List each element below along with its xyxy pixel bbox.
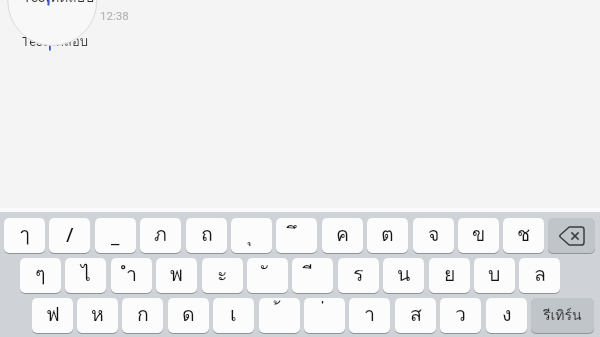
staticText: ร [353,259,364,290]
staticText: ช [517,219,531,250]
staticText: ต [381,219,394,250]
staticText: ถ [201,219,213,250]
staticText: ห [91,299,104,330]
button[interactable]: ห [77,298,118,333]
button[interactable]: Backspace [548,218,595,253]
button[interactable]: ฟ [32,298,73,333]
button[interactable]: ข [458,218,499,253]
button[interactable]: ต [367,218,408,253]
staticText: ๆ [35,259,46,290]
staticText: ข [472,219,486,250]
button[interactable]: ถ [186,218,227,253]
staticText: ไ [81,259,91,290]
staticText: 12:38 [100,9,129,22]
staticText: บ [488,259,501,290]
button[interactable]: ึ [276,218,317,253]
staticText: ก [137,299,149,330]
staticText: จ [428,219,440,250]
button[interactable]: ว [440,298,481,333]
button[interactable]: า [349,298,390,333]
button[interactable]: ไ [65,258,106,293]
staticText: ล [534,259,546,290]
button[interactable]: / [49,218,90,253]
staticText: ด [182,299,195,330]
staticText: รีเทิร์น [543,304,582,326]
staticText: ค [336,219,350,250]
staticText: เ [230,299,237,330]
button[interactable]: ช [503,218,544,253]
button[interactable]: พ [156,258,197,293]
button[interactable]: บ [474,258,515,293]
button[interactable]: ค [322,218,363,253]
button[interactable]: ่ [304,298,345,333]
button[interactable]: รีเทิร์น [531,298,594,333]
staticText: ๅ [20,219,30,250]
button[interactable]: ๆ [20,258,61,293]
staticText: Testทดสอบ [22,31,88,52]
button[interactable]: ้ [259,298,300,333]
staticText: า [364,299,375,330]
button[interactable]: ง [486,298,527,333]
button[interactable]: จ [413,218,454,253]
staticText: พ [170,259,183,290]
button[interactable]: ั [247,258,288,293]
button[interactable]: _ [95,218,136,253]
button[interactable]: น [383,258,424,293]
staticText: _ [111,221,120,248]
staticText: ว [455,299,466,330]
staticText: น [397,259,411,290]
staticText: ฟ [46,299,60,330]
button[interactable]: ภ [140,218,181,253]
button[interactable]: ร [338,258,379,293]
button[interactable]: ุ [231,218,272,253]
button[interactable]: ด [168,298,209,333]
button[interactable]: ย [429,258,470,293]
staticText: / [66,221,74,248]
staticText: ง [502,299,512,330]
staticText: ภ [154,219,167,250]
staticText: ะ [217,259,228,290]
button[interactable]: ะ [202,258,243,293]
button[interactable]: ี [292,258,333,293]
staticText: Testทดสอบ [23,0,95,8]
staticText: ย [444,259,456,290]
button[interactable]: ส [395,298,436,333]
button[interactable]: ๅ [4,218,45,253]
button[interactable]: เ [213,298,254,333]
staticText: ำ [126,259,137,290]
button[interactable]: ก [122,298,163,333]
button[interactable]: ำ [111,258,152,293]
staticText: ส [410,299,422,330]
button[interactable]: ล [519,258,560,293]
